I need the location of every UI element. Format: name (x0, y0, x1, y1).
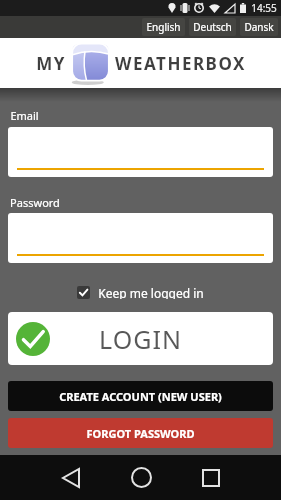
button[interactable]: Keep me logged in (0, 285, 281, 299)
staticText: Email (10, 108, 39, 122)
staticText: 14:55 (251, 1, 277, 15)
button[interactable] (8, 127, 273, 177)
button[interactable]: FORGOT PASSWORD (8, 418, 273, 448)
staticText: English (146, 20, 181, 34)
button[interactable]: Deutsch (189, 18, 236, 36)
button[interactable] (181, 455, 241, 500)
button[interactable] (8, 213, 273, 263)
button[interactable]: LOGIN (8, 312, 273, 365)
button[interactable]: English (142, 18, 185, 36)
staticText: FORGOT PASSWORD (86, 426, 195, 441)
button[interactable] (41, 455, 101, 500)
staticText: MY (36, 52, 66, 75)
staticText: WEATHERBOX (115, 52, 246, 75)
staticText: CREATE ACCOUNT (NEW USER) (59, 389, 222, 404)
button[interactable]: Dansk (240, 18, 278, 36)
button[interactable]: CREATE ACCOUNT (NEW USER) (8, 381, 273, 411)
staticText: Dansk (244, 20, 274, 34)
staticText: Keep me logged in (98, 285, 204, 299)
staticText: Deutsch (193, 20, 232, 34)
button[interactable] (111, 455, 171, 500)
staticText: LOGIN (99, 322, 182, 356)
staticText: Password (10, 195, 60, 209)
